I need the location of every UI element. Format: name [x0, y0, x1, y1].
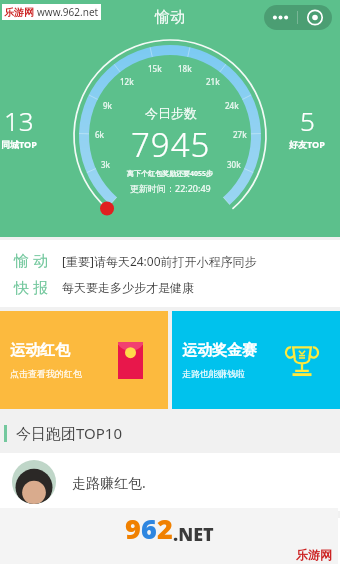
staticText: 27k: [233, 129, 247, 140]
staticText: 运动奖金赛: [182, 341, 257, 360]
staticText: 乐游网: [4, 6, 34, 19]
staticText: 点击查看我的红包: [10, 368, 82, 379]
staticText: [重要]请每天24:00前打开小程序同步: [62, 253, 257, 269]
staticText: 9k: [103, 100, 113, 111]
staticText: 乐游网: [296, 547, 332, 562]
staticText: 6k: [95, 129, 105, 140]
button[interactable]: 5: [284, 99, 330, 154]
staticText: 快 报: [14, 277, 48, 297]
staticText: 愉 动: [14, 250, 48, 270]
staticText: .NET: [173, 522, 214, 547]
staticText: 15k: [148, 63, 162, 74]
staticText: 9: [125, 510, 141, 547]
staticText: 好友TOP: [289, 138, 325, 150]
staticText: 6: [141, 510, 157, 547]
button[interactable]: 运动奖金赛: [172, 311, 340, 409]
staticText: 18k: [178, 63, 192, 74]
staticText: 今日步数: [145, 105, 197, 121]
button[interactable]: Mini program menu: [264, 5, 332, 30]
staticText: 更新时间：22:20:49: [130, 182, 211, 194]
staticText: 30k: [227, 159, 241, 170]
staticText: 2: [157, 510, 173, 547]
staticText: 每天要走多少步才是健康: [62, 280, 194, 295]
staticText: 24k: [225, 100, 239, 111]
staticText: 21k: [206, 76, 220, 87]
staticText: 7945: [131, 122, 211, 167]
staticText: 同城TOP: [1, 138, 37, 150]
button[interactable]: 13: [0, 99, 42, 154]
staticText: 运动红包: [10, 341, 70, 360]
staticText: 走路也能赚钱啦: [182, 368, 245, 379]
staticText: 5: [300, 103, 315, 138]
staticText: 3k: [101, 159, 111, 170]
button[interactable]: 运动红包: [0, 311, 168, 409]
staticText: 12k: [120, 76, 134, 87]
staticText: www.962.net: [37, 5, 99, 19]
button[interactable]: 走路赚红包.: [0, 453, 340, 511]
staticText: 离下个红包奖励还要4055步: [127, 169, 214, 179]
staticText: 13: [4, 103, 34, 138]
staticText: 愉动: [155, 8, 185, 27]
button[interactable]: 愉 动: [0, 240, 340, 307]
staticText: 今日跑团TOP10: [16, 423, 122, 443]
staticText: 走路赚红包.: [72, 473, 146, 492]
